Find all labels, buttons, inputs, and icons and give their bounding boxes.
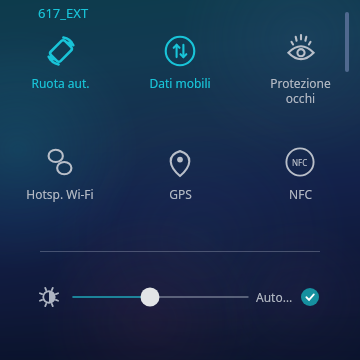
button[interactable]: Brightness bbox=[37, 285, 61, 309]
staticText: Dati mobili bbox=[149, 75, 211, 91]
button[interactable]: Auto… bbox=[256, 281, 319, 313]
button[interactable]: Dati mobili bbox=[124, 34, 236, 108]
staticText: 617_EXT bbox=[38, 4, 89, 22]
staticText: Auto… bbox=[256, 289, 293, 305]
button[interactable]: GPS bbox=[124, 145, 236, 219]
button[interactable]: NFC bbox=[244, 145, 356, 219]
button[interactable]: Brightness slider bbox=[73, 281, 248, 313]
staticText: Hotsp. Wi-Fi bbox=[26, 186, 94, 202]
button[interactable]: Protezione occhi bbox=[244, 34, 356, 108]
staticText: Protezione occhi bbox=[270, 75, 331, 106]
staticText: GPS bbox=[169, 186, 192, 202]
staticText: NFC bbox=[289, 186, 312, 202]
button[interactable]: Ruota aut. bbox=[4, 34, 116, 108]
staticText: Ruota aut. bbox=[31, 75, 90, 91]
staticText: NFC bbox=[292, 157, 308, 168]
button[interactable]: Hotsp. Wi-Fi bbox=[4, 145, 116, 219]
